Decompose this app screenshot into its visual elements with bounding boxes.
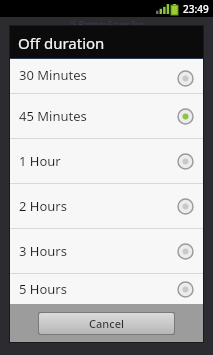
button[interactable]: 45 Minutes xyxy=(10,94,203,138)
staticText: 2 Hours xyxy=(19,197,177,215)
button[interactable]: 2 Hours xyxy=(10,184,203,228)
other: Signal strength xyxy=(156,4,167,14)
staticText: 45 Minutes xyxy=(19,107,177,125)
staticText: 3 Hours xyxy=(19,242,177,260)
staticText: Off duration xyxy=(18,33,105,53)
button[interactable]: 1 Hour xyxy=(10,139,203,183)
button[interactable]: 3 Hours xyxy=(10,229,203,273)
button[interactable]: 5 Hours xyxy=(10,274,203,304)
staticText: JS Battery Saver Pro xyxy=(70,19,144,30)
staticText: 23:49 xyxy=(183,2,209,16)
other: Battery xyxy=(171,4,178,15)
staticText: 30 Minutes xyxy=(19,66,177,84)
button[interactable]: Cancel xyxy=(39,313,174,334)
button[interactable]: 30 Minutes xyxy=(10,59,203,93)
staticText: 5 Hours xyxy=(19,280,177,298)
staticText: 1 Hour xyxy=(19,152,177,170)
staticText: Cancel xyxy=(89,316,124,331)
